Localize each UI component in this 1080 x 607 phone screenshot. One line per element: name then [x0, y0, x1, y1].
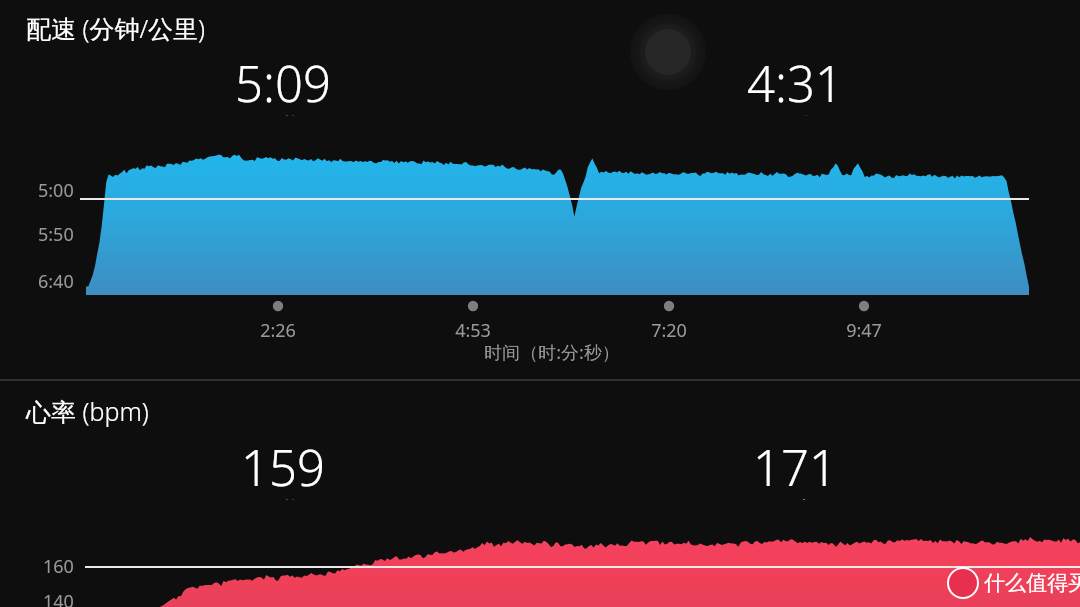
staticText: 最佳: [777, 113, 813, 116]
button[interactable]: 4:31: [655, 50, 935, 120]
staticText: 159: [241, 434, 325, 501]
staticText: 平均: [265, 113, 301, 116]
button[interactable]: 5:09: [143, 50, 423, 120]
staticText: 配速 (分钟/公里): [26, 11, 206, 45]
staticText: 160: [43, 554, 74, 578]
staticText: 什么值得买: [984, 570, 1080, 596]
staticText: 4:31: [747, 50, 843, 117]
staticText: 心率 (bpm): [26, 394, 149, 428]
staticText: 140: [43, 589, 74, 607]
button[interactable]: 159: [143, 434, 423, 504]
staticText: 171: [753, 434, 837, 501]
staticText: 6:40: [38, 269, 74, 293]
staticText: 4:53: [455, 318, 491, 343]
staticText: 值: [950, 574, 964, 593]
staticText: 2:26: [260, 318, 296, 343]
staticText: 9:47: [846, 318, 882, 343]
staticText: 平均: [265, 497, 301, 500]
staticText: 5:00: [38, 178, 74, 202]
staticText: 7:20: [651, 318, 687, 343]
button[interactable]: 171: [655, 434, 935, 504]
staticText: 最大: [777, 497, 813, 500]
staticText: 时间（时:分:秒）: [484, 340, 620, 365]
staticText: 5:09: [235, 50, 331, 117]
button[interactable]: 配速 (分钟/公里): [26, 11, 206, 45]
staticText: 5:50: [38, 222, 74, 246]
button[interactable]: 心率 (bpm): [26, 394, 149, 428]
